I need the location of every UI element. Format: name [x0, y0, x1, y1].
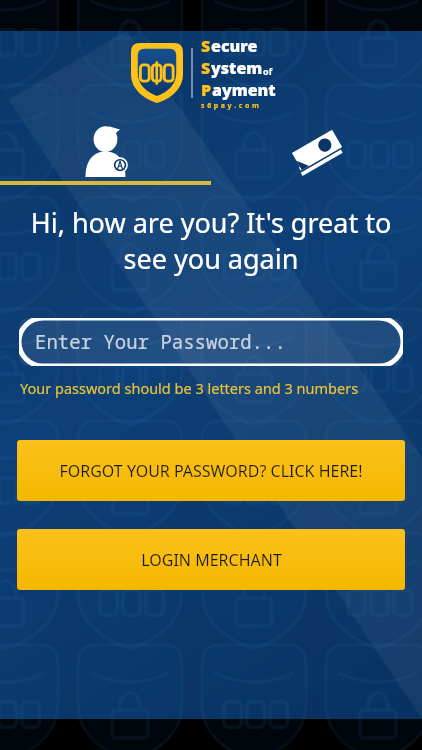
staticText: Enter Your Password...: [35, 329, 286, 355]
button[interactable]: LOGIN MERCHANT: [17, 529, 405, 590]
staticText: S: [201, 35, 211, 57]
staticText: of: [263, 65, 273, 77]
staticText: ayment: [212, 79, 276, 101]
staticText: LOGIN MERCHANT: [141, 549, 282, 571]
button[interactable]: User login: [0, 119, 211, 181]
staticText: s 6 p a y . c o m: [201, 101, 260, 111]
staticText: Hi, how are you? It's great to see you a…: [24, 204, 398, 277]
button[interactable]: Merchant payments: [211, 119, 422, 181]
staticText: S: [201, 57, 211, 79]
button[interactable]: FORGOT YOUR PASSWORD? CLICK HERE!: [17, 440, 405, 501]
staticText: Your password should be 3 letters and 3 …: [20, 378, 402, 398]
staticText: FORGOT YOUR PASSWORD? CLICK HERE!: [59, 460, 363, 482]
button[interactable]: Enter Your Password...: [19, 318, 403, 366]
staticText: ystem: [211, 57, 263, 79]
staticText: P: [201, 79, 212, 101]
staticText: ecure: [211, 35, 258, 57]
